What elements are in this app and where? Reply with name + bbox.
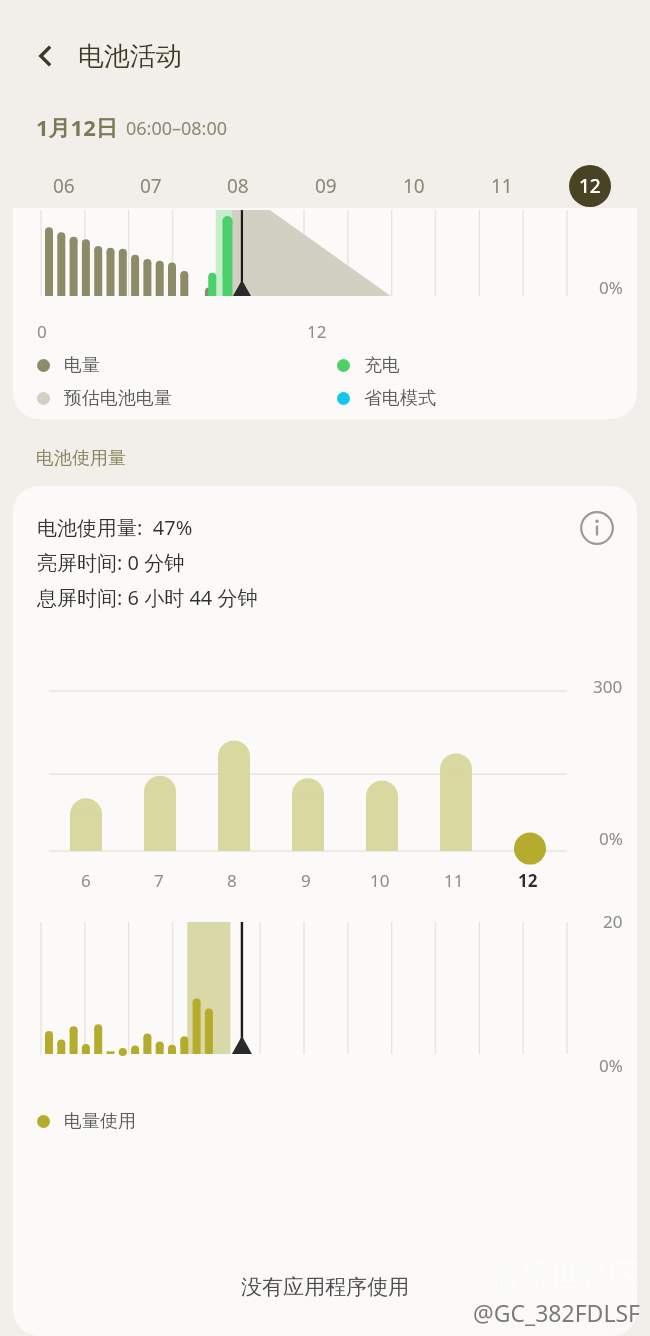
staticText: 0% (599, 827, 623, 850)
staticText: 300 (593, 675, 623, 698)
staticText: 10 (370, 869, 390, 892)
button[interactable]: 10 (370, 164, 458, 208)
staticText: 电量 (64, 354, 100, 377)
staticText: 11 (444, 869, 464, 892)
button[interactable]: 12 (546, 164, 634, 208)
button[interactable]: Back (22, 32, 70, 80)
staticText: 亮屏时间: 0 分钟 (37, 549, 185, 576)
staticText: 电量使用 (64, 1110, 136, 1133)
staticText: 07 (140, 173, 162, 199)
staticText: 1月12日 (36, 112, 118, 142)
staticText: 06:00–08:00 (126, 116, 228, 141)
button[interactable]: 11 (458, 164, 546, 208)
staticText: 充电 (364, 354, 400, 377)
staticText: 电池使用量 (36, 447, 126, 470)
staticText: 电池使用量: 47% (37, 514, 193, 541)
staticText: 省电模式 (364, 387, 436, 410)
staticText: 09 (315, 173, 337, 199)
staticText: 12 (518, 869, 538, 892)
button[interactable]: 07 (107, 164, 194, 208)
staticText: 12 (579, 173, 601, 199)
staticText: 7 (154, 869, 164, 892)
staticText: 预估电池电量 (64, 387, 172, 410)
staticText: 0% (599, 1054, 623, 1076)
staticText: 6 (81, 869, 91, 892)
staticText: 06 (53, 173, 75, 199)
staticText: 0% (599, 276, 623, 299)
staticText: 10 (403, 173, 425, 199)
staticText: 0 (37, 320, 47, 343)
staticText: @GC_382FDLSF (473, 1297, 640, 1328)
button[interactable]: Info (571, 502, 623, 554)
staticText: 没有应用程序使用 (241, 1274, 409, 1300)
staticText: 8 (227, 869, 237, 892)
staticText: 20 (603, 910, 623, 933)
staticText: 电池活动 (78, 40, 182, 73)
button[interactable]: 08 (194, 164, 282, 208)
staticText: 11 (491, 173, 513, 199)
staticText: 08 (227, 173, 249, 199)
button[interactable]: 09 (282, 164, 370, 208)
staticText: 9 (301, 869, 311, 892)
button[interactable]: 06 (20, 164, 107, 208)
staticText: 息屏时间: 6 小时 44 分钟 (37, 584, 258, 611)
staticText: 12 (307, 320, 327, 343)
